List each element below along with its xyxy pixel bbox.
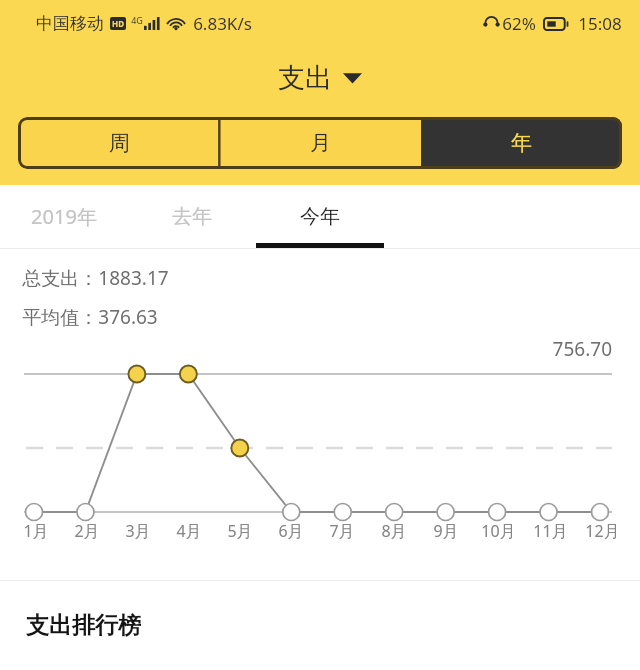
staticText: 月 (310, 130, 331, 156)
button[interactable]: 2019年 (0, 185, 128, 248)
staticText: 3月 (125, 520, 151, 542)
staticText: 6.83K/s (193, 12, 252, 35)
staticText: 平均值：376.63 (22, 304, 158, 330)
staticText: 4G (131, 14, 143, 26)
button[interactable]: 周 (18, 117, 220, 169)
staticText: 年 (511, 130, 532, 156)
staticText: 4月 (176, 520, 202, 542)
staticText: 6月 (278, 520, 304, 542)
staticText: 2月 (74, 520, 100, 542)
staticText: 周 (109, 130, 130, 156)
button[interactable]: 今年 (256, 185, 384, 248)
button[interactable]: 年 (421, 117, 622, 169)
staticText: 今年 (300, 204, 340, 229)
staticText: 8月 (381, 520, 407, 542)
staticText: 15:08 (578, 12, 622, 35)
staticText: 756.70 (0, 336, 612, 362)
staticText: 支出 (278, 61, 332, 95)
staticText: 12月 (585, 520, 620, 542)
staticText: 支出排行榜 (26, 611, 141, 640)
other: Change type (343, 72, 362, 84)
staticText: 9月 (433, 520, 459, 542)
staticText: 去年 (172, 204, 212, 229)
staticText: 7月 (329, 520, 355, 542)
button[interactable]: 支出 (264, 57, 376, 99)
button[interactable]: 去年 (128, 185, 256, 248)
staticText: 62% (502, 12, 536, 35)
staticText: 5月 (227, 520, 253, 542)
staticText: 总支出：1883.17 (22, 265, 169, 291)
staticText: 10月 (481, 520, 516, 542)
staticText: 2019年 (31, 203, 97, 230)
staticText: HD (112, 18, 124, 29)
staticText: 1月 (23, 520, 49, 542)
staticText: 中国移动 (36, 13, 104, 34)
button[interactable]: 月 (220, 117, 421, 169)
staticText: 11月 (533, 520, 568, 542)
